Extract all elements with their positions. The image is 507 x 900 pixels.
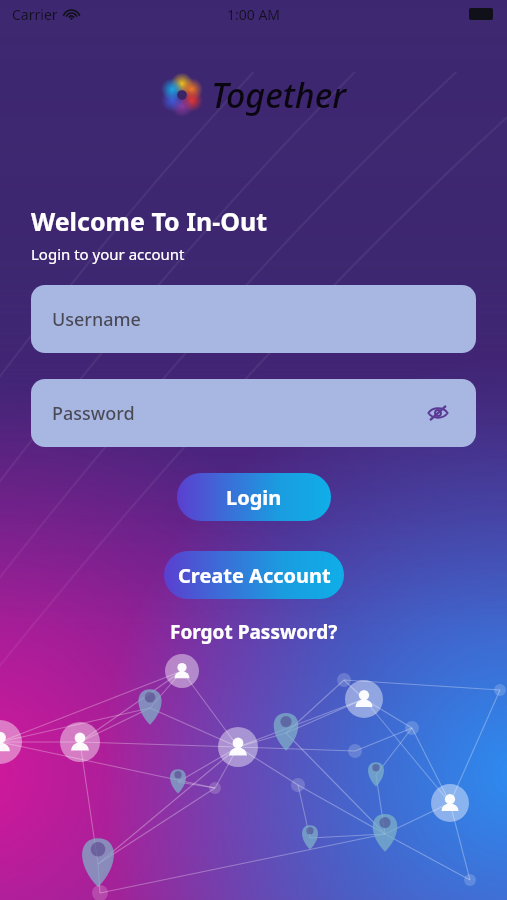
staticText: Carrier — [12, 5, 58, 24]
button[interactable]: Password — [31, 379, 476, 447]
staticText: Login to your account — [31, 244, 185, 264]
staticText: 1:00 AM — [227, 5, 281, 24]
button[interactable]: Forgot Password? — [160, 613, 348, 651]
staticText: Forgot Password? — [170, 619, 338, 645]
staticText: Together — [211, 72, 347, 118]
staticText: Login — [226, 484, 282, 511]
staticText: Password — [52, 401, 135, 426]
staticText: Create Account — [178, 562, 331, 589]
button[interactable]: Login — [177, 473, 331, 521]
staticText: Welcome To In-Out — [31, 204, 268, 238]
button[interactable]: Create Account — [164, 551, 344, 599]
button[interactable]: Username — [31, 285, 476, 353]
staticText: Username — [52, 307, 141, 332]
button[interactable]: Show password — [421, 396, 455, 430]
